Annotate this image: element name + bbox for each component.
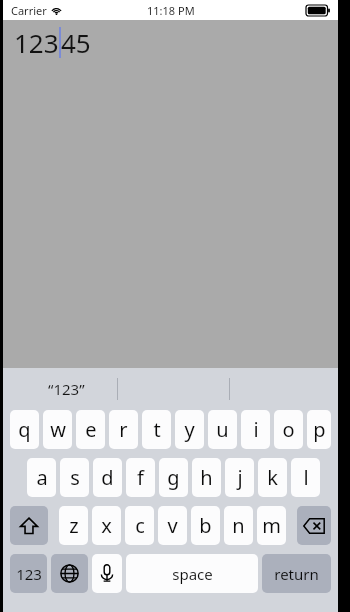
button[interactable]: r — [109, 410, 138, 449]
staticText: b — [199, 512, 212, 539]
staticText: c — [135, 512, 145, 539]
button[interactable]: x — [92, 506, 121, 545]
staticText: n — [232, 512, 245, 539]
staticText: Carrier — [11, 3, 47, 18]
button[interactable]: “123” — [27, 372, 105, 406]
button[interactable]: p — [307, 410, 331, 449]
staticText: g — [167, 464, 180, 491]
staticText: h — [200, 464, 213, 491]
staticText: space — [172, 564, 213, 584]
button[interactable]: l — [291, 458, 320, 497]
button[interactable]: 123 — [10, 554, 47, 593]
staticText: o — [282, 416, 295, 443]
button[interactable]: Backspace — [297, 506, 331, 545]
staticText: z — [69, 512, 79, 539]
staticText: f — [137, 464, 144, 491]
staticText: return — [274, 564, 319, 584]
button[interactable]: v — [158, 506, 187, 545]
button[interactable]: space — [126, 554, 258, 593]
staticText: j — [237, 464, 243, 491]
button[interactable]: return — [262, 554, 331, 593]
button[interactable]: i — [241, 410, 270, 449]
staticText: 123 — [14, 25, 59, 60]
button[interactable]: z — [59, 506, 88, 545]
button[interactable]: f — [126, 458, 155, 497]
button[interactable]: k — [258, 458, 287, 497]
staticText: p — [313, 416, 326, 443]
button[interactable]: s — [60, 458, 89, 497]
staticText: s — [70, 464, 80, 491]
staticText: 45 — [61, 25, 91, 60]
button[interactable]: Shift — [10, 506, 48, 545]
button[interactable]: c — [125, 506, 154, 545]
staticText: x — [101, 512, 112, 539]
staticText: w — [50, 416, 66, 443]
staticText: u — [216, 416, 229, 443]
staticText: q — [18, 416, 31, 443]
button[interactable]: t — [142, 410, 171, 449]
button[interactable]: b — [191, 506, 220, 545]
button[interactable]: o — [274, 410, 303, 449]
button[interactable]: y — [175, 410, 204, 449]
button[interactable]: Next keyboard — [51, 554, 88, 593]
button[interactable]: g — [159, 458, 188, 497]
staticText: v — [167, 512, 178, 539]
button[interactable]: a — [27, 458, 56, 497]
button[interactable]: n — [224, 506, 253, 545]
button[interactable]: j — [225, 458, 254, 497]
button[interactable]: u — [208, 410, 237, 449]
staticText: 11:18 PM — [147, 3, 195, 18]
button[interactable]: e — [76, 410, 105, 449]
staticText: t — [153, 416, 161, 443]
staticText: “123” — [48, 379, 85, 399]
staticText: 123 — [16, 564, 42, 584]
button[interactable]: Dictate — [92, 554, 122, 593]
staticText: k — [267, 464, 278, 491]
button[interactable]: d — [93, 458, 122, 497]
staticText: y — [184, 416, 195, 443]
button[interactable]: q — [10, 410, 39, 449]
staticText: a — [36, 464, 48, 491]
staticText: l — [303, 464, 309, 491]
staticText: i — [253, 416, 259, 443]
button[interactable]: h — [192, 458, 221, 497]
staticText: d — [101, 464, 114, 491]
button[interactable]: m — [257, 506, 286, 545]
staticText: r — [119, 416, 128, 443]
staticText: e — [85, 416, 97, 443]
staticText: m — [262, 512, 281, 539]
button[interactable]: w — [43, 410, 72, 449]
